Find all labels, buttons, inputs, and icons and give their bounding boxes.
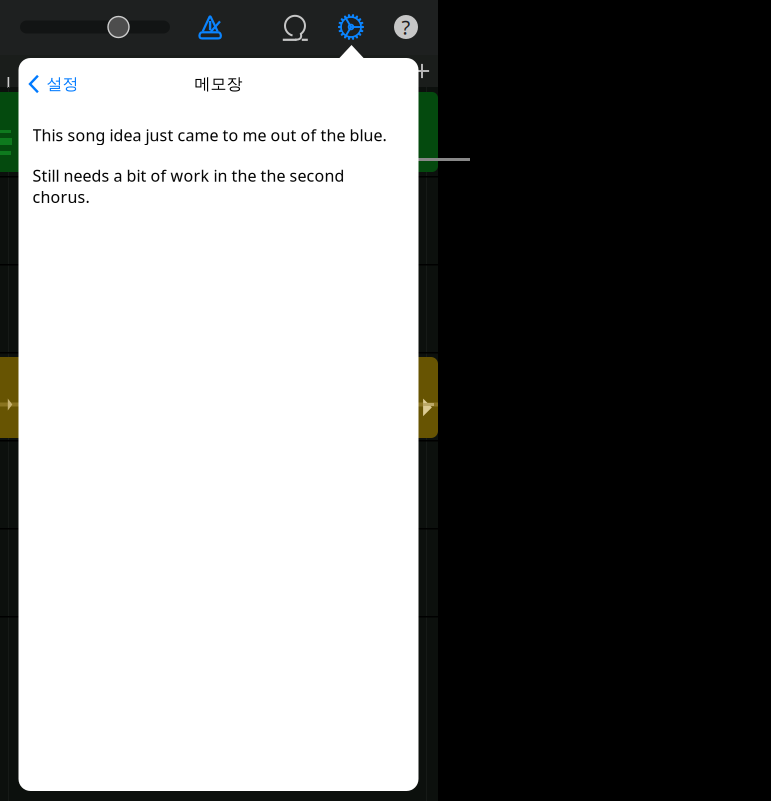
button[interactable]: Cycle [273, 6, 317, 50]
button[interactable]: Song settings [329, 5, 373, 49]
button[interactable]: Metronome [188, 5, 232, 49]
staticText: 메모장 [194, 74, 242, 94]
staticText: 설정 [46, 74, 78, 94]
button[interactable]: Master volume [20, 5, 188, 49]
button[interactable]: Help [384, 5, 428, 49]
staticText: Still needs a bit of work in the the sec… [32, 165, 344, 207]
button[interactable]: Add track [406, 55, 438, 87]
staticText: This song idea just came to me out of th… [32, 124, 386, 146]
button[interactable]: 설정 [18, 64, 88, 104]
staticText: ? [401, 14, 410, 40]
